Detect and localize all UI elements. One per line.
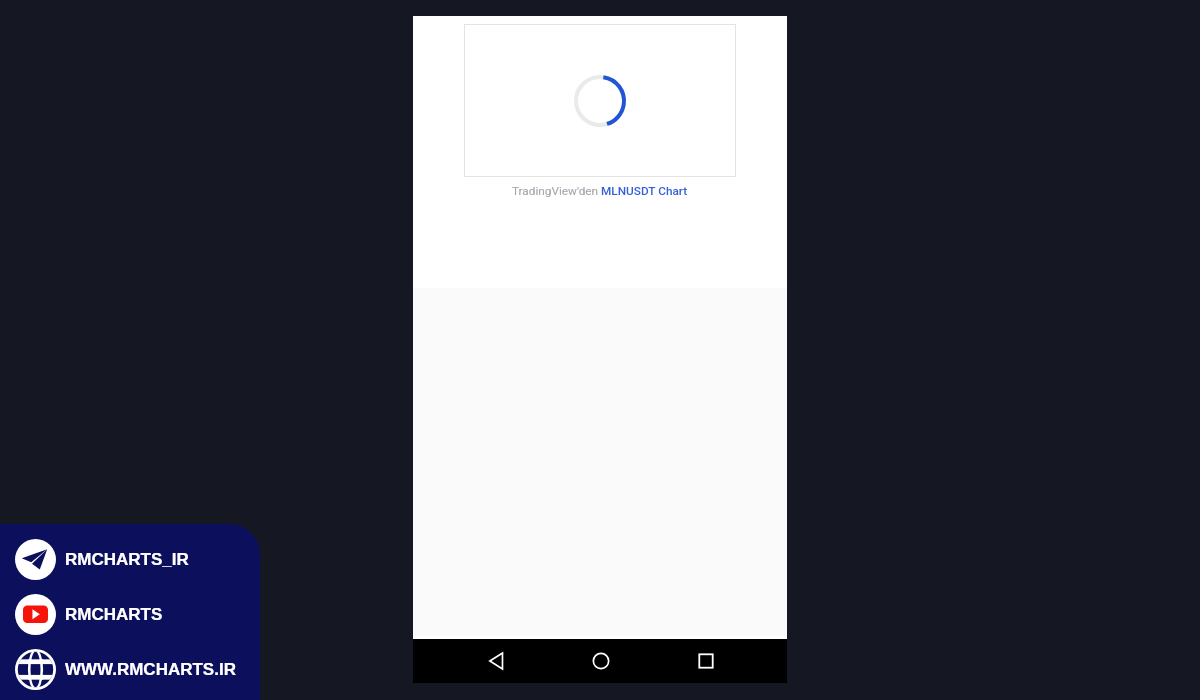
staticText: WWW.RMCHARTS.IR [65, 660, 236, 679]
button[interactable]: RMCHARTS_IR [0, 539, 260, 580]
staticText: RMCHARTS_IR [65, 550, 189, 569]
staticText: RMCHARTS [65, 605, 163, 624]
button[interactable]: Back [469, 639, 523, 683]
button[interactable]: WWW.RMCHARTS.IR [0, 649, 260, 690]
staticText: TradingView'den MLNUSDT Chart [512, 184, 688, 198]
button[interactable] [464, 24, 736, 177]
button[interactable]: Recent apps [679, 639, 733, 683]
button[interactable]: RMCHARTS [0, 594, 260, 635]
button[interactable]: Home [574, 639, 628, 683]
button[interactable]: TradingView'den MLNUSDT Chart [512, 184, 688, 198]
